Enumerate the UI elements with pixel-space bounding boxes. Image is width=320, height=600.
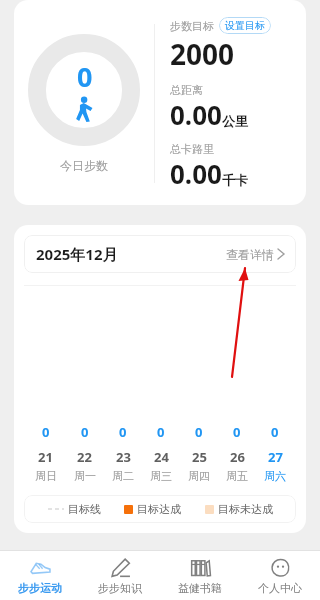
staticText: 设置目标 — [225, 19, 265, 32]
button[interactable]: 个人中心 — [240, 551, 320, 600]
staticText: 周五 — [226, 469, 248, 483]
staticText: 0 — [119, 423, 127, 441]
staticText: 周六 — [264, 469, 286, 483]
button[interactable]: 0 — [218, 423, 256, 483]
staticText: 步步运动 — [18, 581, 62, 595]
button[interactable]: 益健书籍 — [160, 551, 240, 600]
staticText: 千卡 — [222, 172, 248, 188]
staticText: 21 — [38, 448, 53, 466]
staticText: 0 — [195, 423, 203, 441]
staticText: 今日步数 — [60, 158, 108, 173]
staticText: 总距离 — [170, 83, 203, 97]
staticText: 0.00 — [170, 156, 222, 191]
staticText: 23 — [116, 448, 131, 466]
staticText: 0 — [157, 423, 165, 441]
other: 步步运动 — [30, 557, 51, 578]
staticText: 27 — [268, 448, 283, 466]
staticText: 总卡路里 — [170, 142, 214, 156]
staticText: 目标线 — [68, 502, 101, 516]
staticText: 0 — [42, 423, 50, 441]
staticText: 24 — [154, 448, 169, 466]
staticText: 2025年12月 — [36, 244, 118, 264]
button[interactable]: 0 — [180, 423, 218, 483]
staticText: 查看详情 — [226, 247, 274, 262]
staticText: 2000 — [170, 35, 235, 73]
staticText: 目标未达成 — [218, 502, 273, 516]
button[interactable]: 设置目标 — [219, 17, 271, 34]
staticText: 25 — [192, 448, 207, 466]
staticText: 周日 — [35, 469, 57, 483]
staticText: 周四 — [188, 469, 210, 483]
staticText: 0 — [271, 423, 279, 441]
staticText: 0.00 — [170, 97, 222, 132]
staticText: 0 — [81, 423, 89, 441]
staticText: 步步知识 — [98, 581, 142, 595]
button[interactable]: 0 — [26, 423, 65, 483]
other: 个人中心 — [270, 557, 291, 578]
staticText: 周一 — [74, 469, 96, 483]
staticText: 0 — [233, 423, 241, 441]
button[interactable]: 0 — [142, 423, 180, 483]
button[interactable]: 0 — [65, 423, 104, 483]
button[interactable]: 0 — [104, 423, 142, 483]
staticText: 益健书籍 — [178, 581, 222, 595]
staticText: 周二 — [112, 469, 134, 483]
staticText: 26 — [230, 448, 245, 466]
button[interactable]: 步步知识 — [80, 551, 160, 600]
staticText: 0 — [77, 58, 93, 95]
button[interactable]: 2025年12月 — [24, 235, 296, 273]
staticText: 22 — [77, 448, 92, 466]
staticText: 个人中心 — [258, 581, 302, 595]
button[interactable]: 步步运动 — [0, 551, 80, 600]
button[interactable]: 0 — [256, 423, 294, 483]
staticText: 步数目标 — [170, 19, 214, 33]
other: 益健书籍 — [190, 557, 211, 578]
staticText: 周三 — [150, 469, 172, 483]
other: 步步知识 — [110, 557, 131, 578]
staticText: 目标达成 — [137, 502, 181, 516]
staticText: 公里 — [222, 113, 248, 129]
